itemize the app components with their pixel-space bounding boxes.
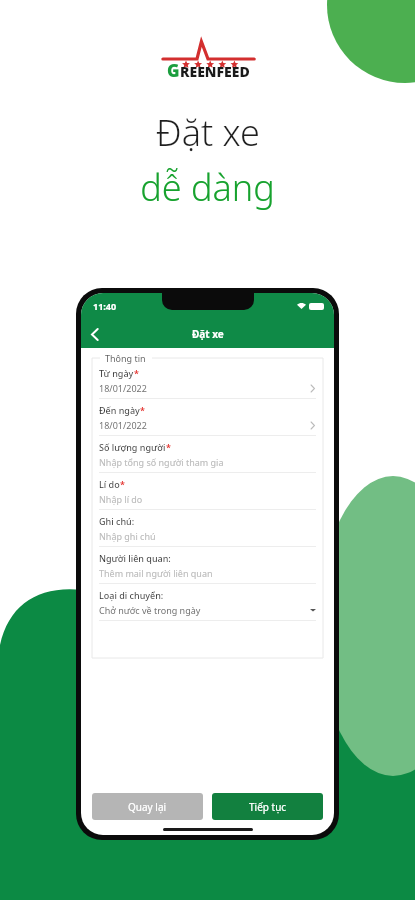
staticText: * <box>166 441 171 453</box>
staticText: Người liên quan: <box>99 552 171 564</box>
staticText: Chở nước về trong ngày <box>99 604 310 616</box>
staticText: Nhập ghi chú <box>99 530 316 542</box>
staticText: Nhập lí do <box>99 493 316 505</box>
staticText: Thêm mail người liên quan <box>99 567 316 579</box>
button[interactable]: Back <box>81 320 109 348</box>
staticText: REENFEED <box>180 62 250 81</box>
button[interactable]: Ghi chú: <box>99 515 316 552</box>
button[interactable]: Số lượng người <box>99 441 316 478</box>
staticText: Loại di chuyển: <box>99 589 164 601</box>
button[interactable]: Từ ngày <box>99 367 316 404</box>
staticText: 11:40 <box>93 300 117 312</box>
staticText: * <box>134 367 139 379</box>
staticText: Thông tin <box>105 352 146 364</box>
staticText: Lí do <box>99 478 120 490</box>
staticText: G <box>167 59 180 82</box>
staticText: Số lượng người <box>99 441 166 453</box>
staticText: Tiếp tục <box>249 800 287 814</box>
button[interactable]: Người liên quan: <box>99 552 316 589</box>
staticText: 18/01/2022 <box>99 419 309 431</box>
button[interactable]: Lí do <box>99 478 316 515</box>
staticText: Nhập tổng số người tham gia <box>99 456 316 468</box>
button[interactable]: Quay lại <box>92 793 203 820</box>
staticText: Từ ngày <box>99 367 134 379</box>
staticText: * <box>140 404 145 416</box>
staticText: 18/01/2022 <box>99 382 309 394</box>
button[interactable]: Tiếp tục <box>212 793 323 820</box>
staticText: Đặt xe <box>156 108 260 157</box>
button[interactable]: Loại di chuyển: <box>99 589 316 626</box>
button[interactable]: Đến ngày <box>99 404 316 441</box>
staticText: Đặt xe <box>192 327 224 341</box>
staticText: dễ dàng <box>140 163 275 212</box>
staticText: Quay lại <box>128 800 167 814</box>
staticText: * <box>120 478 125 490</box>
staticText: Ghi chú: <box>99 515 135 527</box>
staticText: Đến ngày <box>99 404 140 416</box>
